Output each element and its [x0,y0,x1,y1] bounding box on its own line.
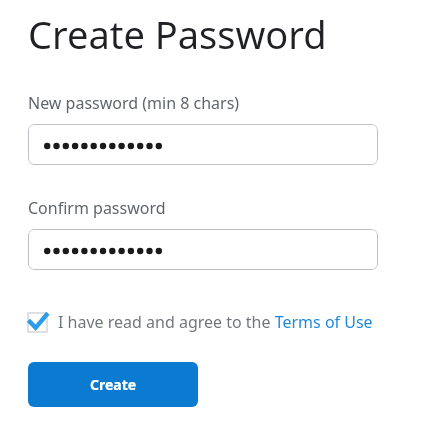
staticText: Create Password [28,8,327,60]
button[interactable] [28,229,378,270]
staticText: I have read and agree to the Terms of Us… [58,311,373,333]
staticText: New password (min 8 chars) [28,92,240,114]
staticText: Create [90,375,137,394]
button[interactable]: Create [28,362,198,407]
staticText: Confirm password [28,197,166,219]
other: Agree to Terms of Use [28,313,47,332]
button[interactable] [28,124,378,165]
button[interactable]: Agree to Terms of Use [28,311,373,333]
